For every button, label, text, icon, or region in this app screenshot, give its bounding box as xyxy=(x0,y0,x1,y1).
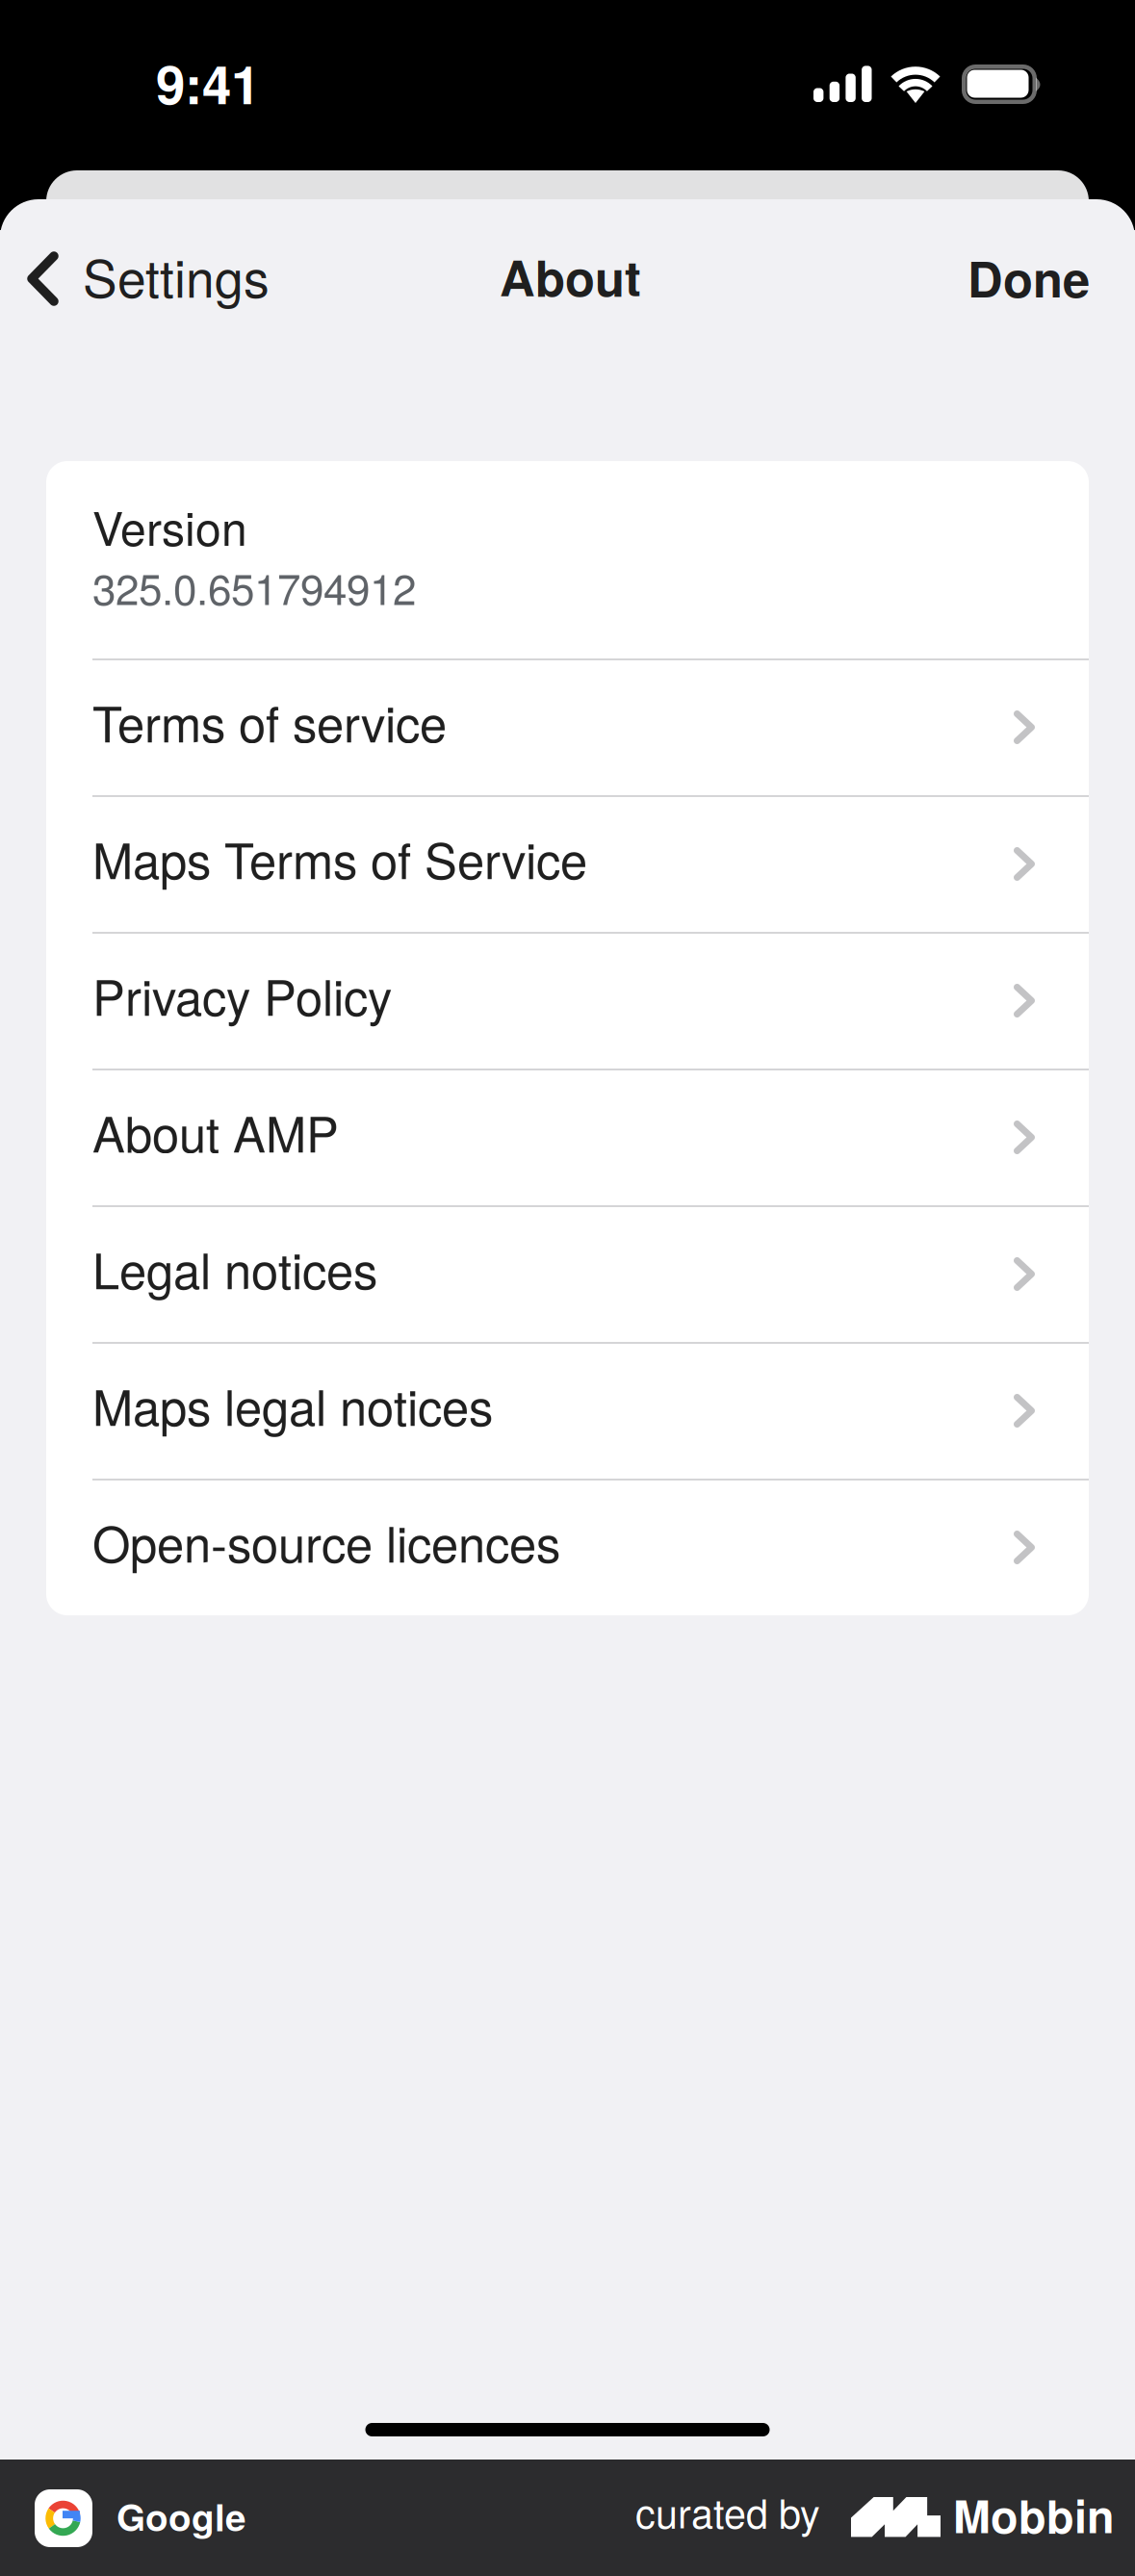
staticText: curated by xyxy=(635,2483,820,2540)
staticText: Terms of service xyxy=(92,686,447,756)
staticText: Mobbin xyxy=(953,2483,1115,2547)
staticText: Legal notices xyxy=(92,1233,377,1303)
button[interactable]: Privacy Policy xyxy=(46,934,1089,1069)
button[interactable]: Maps Terms of Service xyxy=(46,797,1089,932)
staticText: Google xyxy=(116,2489,245,2543)
staticText: Version xyxy=(92,493,247,559)
staticText: 9:41 xyxy=(156,45,260,121)
staticText: About xyxy=(500,241,641,311)
button[interactable]: Settings xyxy=(0,230,308,336)
staticText: Done xyxy=(967,243,1090,312)
button[interactable]: Legal notices xyxy=(46,1207,1089,1342)
staticText: Open-source licences xyxy=(92,1507,560,1576)
staticText: 325.0.651794912 xyxy=(92,556,416,617)
button[interactable]: Open-source licences xyxy=(46,1481,1089,1615)
staticText: Privacy Policy xyxy=(92,960,392,1030)
button[interactable]: Terms of service xyxy=(46,660,1089,795)
staticText: Maps legal notices xyxy=(92,1370,493,1440)
staticText: Settings xyxy=(83,239,270,312)
staticText: About AMP xyxy=(92,1096,339,1166)
button[interactable]: Maps legal notices xyxy=(46,1344,1089,1479)
button[interactable]: Done xyxy=(865,230,1135,336)
staticText: Maps Terms of Service xyxy=(92,823,587,893)
button[interactable]: About AMP xyxy=(46,1070,1089,1205)
